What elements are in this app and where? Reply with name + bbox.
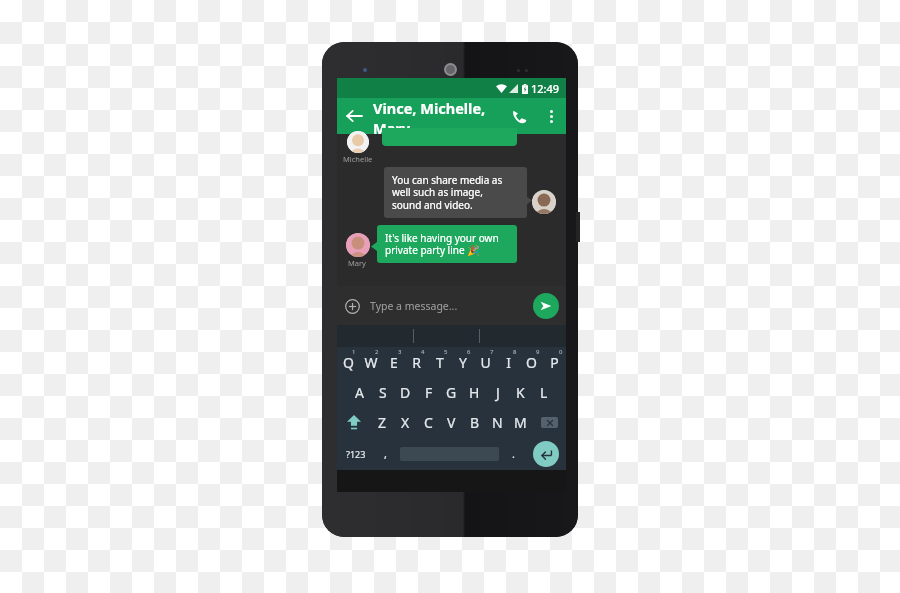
staticText: D (400, 383, 411, 402)
button[interactable]: , (374, 437, 397, 470)
button[interactable]: S (371, 377, 394, 407)
staticText: 0 (559, 348, 563, 356)
staticText: 12:49 (531, 81, 560, 96)
staticText: 7 (490, 348, 494, 356)
staticText: 9 (536, 348, 540, 356)
button[interactable]: Shift (337, 407, 371, 437)
button[interactable]: L (532, 377, 555, 407)
staticText: Mary (348, 258, 366, 268)
staticText: Michelle (343, 154, 373, 164)
button[interactable]: D (394, 377, 417, 407)
other: Attach (337, 291, 367, 321)
button[interactable]: I (497, 347, 520, 377)
staticText: Vince, Michelle, Mary (373, 98, 502, 134)
button[interactable]: Back (337, 99, 371, 133)
button[interactable]: M (509, 407, 532, 437)
button[interactable]: G (440, 377, 463, 407)
staticText: ?123 (346, 448, 366, 460)
staticText: M (514, 413, 527, 432)
button[interactable]: W (359, 347, 382, 377)
button[interactable]: P (543, 347, 566, 377)
staticText: You can share media as well such as imag… (392, 173, 503, 212)
staticText: R (412, 353, 421, 372)
staticText: G (446, 383, 457, 402)
staticText: 5 (444, 348, 448, 356)
staticText: V (447, 413, 456, 432)
staticText: O (526, 353, 537, 372)
button[interactable]: O (520, 347, 543, 377)
button[interactable]: Attach (337, 286, 566, 325)
staticText: E (390, 353, 398, 372)
staticText: S (379, 383, 387, 402)
staticText: 2 (375, 348, 379, 356)
staticText: 3 (398, 348, 402, 356)
button[interactable]: Z (371, 407, 394, 437)
button[interactable]: F (417, 377, 440, 407)
staticText: B (470, 413, 480, 432)
button[interactable]: J (486, 377, 509, 407)
staticText: P (550, 353, 559, 372)
staticText: 6 (467, 348, 471, 356)
button[interactable]: ?123 (337, 437, 374, 470)
button[interactable]: B (463, 407, 486, 437)
button[interactable]: C (417, 407, 440, 437)
staticText: 4 (421, 348, 425, 356)
staticText: X (401, 413, 410, 432)
button[interactable]: Y (451, 347, 474, 377)
staticText: T (436, 353, 444, 372)
staticText: H (469, 383, 480, 402)
button[interactable]: Enter (525, 437, 566, 470)
staticText: W (364, 353, 378, 372)
button[interactable]: . (502, 437, 525, 470)
button[interactable] (397, 437, 502, 470)
staticText: L (540, 383, 548, 402)
staticText: It's like having your own private party … (385, 231, 499, 257)
button[interactable]: More options (536, 101, 566, 131)
staticText: Z (378, 413, 387, 432)
button[interactable]: K (509, 377, 532, 407)
button[interactable]: Send (533, 293, 559, 319)
staticText: U (480, 353, 491, 372)
staticText: . (512, 446, 515, 461)
staticText: I (506, 353, 511, 372)
button[interactable]: R (405, 347, 428, 377)
staticText: A (355, 383, 364, 402)
button[interactable]: U (474, 347, 497, 377)
button[interactable]: T (428, 347, 451, 377)
staticText: J (496, 383, 500, 402)
button[interactable]: E (382, 347, 405, 377)
button[interactable]: A (348, 377, 371, 407)
button[interactable]: Backspace (532, 407, 566, 437)
staticText: N (492, 413, 503, 432)
staticText: Q (343, 353, 354, 372)
button[interactable]: It's like having your own private party … (377, 225, 517, 263)
staticText: Type a message... (370, 299, 533, 313)
button[interactable]: You can share media as well such as imag… (384, 167, 527, 218)
staticText: F (425, 383, 433, 402)
button[interactable]: V (440, 407, 463, 437)
button[interactable]: X (394, 407, 417, 437)
staticText: K (516, 383, 525, 402)
button[interactable]: Call (502, 99, 536, 133)
staticText: 1 (352, 348, 356, 356)
button[interactable]: N (486, 407, 509, 437)
staticText: 8 (513, 348, 517, 356)
staticText: C (424, 413, 433, 432)
button[interactable]: Q (337, 347, 359, 377)
staticText: , (384, 446, 387, 461)
staticText: Y (459, 353, 467, 372)
button[interactable]: H (463, 377, 486, 407)
